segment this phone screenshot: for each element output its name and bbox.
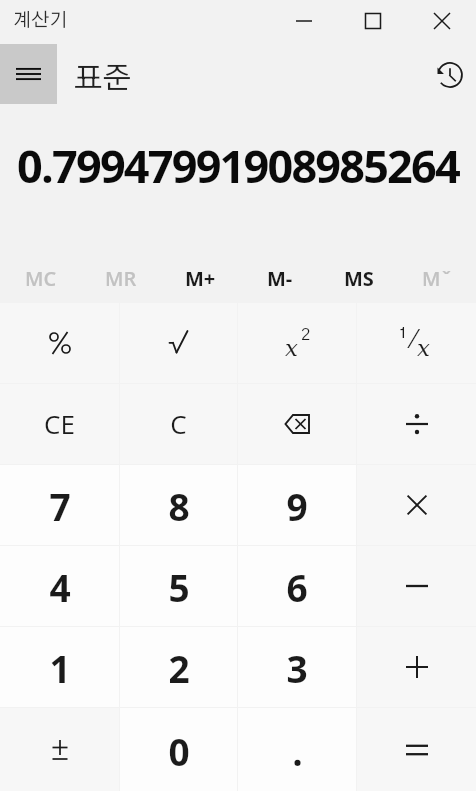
button[interactable]: 2 [120, 627, 237, 707]
button[interactable]: 3 [238, 627, 356, 707]
staticText: ¹⁄ [399, 328, 421, 353]
button[interactable]: Square root [120, 303, 237, 383]
button[interactable]: Open Navigation [0, 44, 57, 104]
button[interactable]: Multiply [357, 465, 476, 545]
button[interactable]: 6 [238, 546, 356, 626]
button[interactable]: Equals [357, 708, 476, 791]
button[interactable]: Divide [357, 384, 476, 464]
staticText: 표준 [74, 64, 132, 94]
staticText: 3 [286, 643, 308, 693]
button[interactable]: Close [419, 1, 465, 41]
staticText: x [417, 335, 430, 362]
staticText: CE [44, 406, 75, 441]
button[interactable]: Backspace [238, 384, 356, 464]
staticText: 0 [168, 726, 190, 776]
staticText: 7 [49, 481, 71, 531]
button[interactable]: 9 [238, 465, 356, 545]
staticText: C [170, 406, 187, 441]
button[interactable]: MC [0, 255, 80, 303]
button[interactable]: MR [80, 255, 160, 303]
staticText: 1 [49, 643, 71, 693]
button[interactable]: Minus [357, 546, 476, 626]
button[interactable]: Mˇ [397, 255, 476, 303]
staticText: 2 [168, 643, 190, 693]
button[interactable]: M- [239, 255, 318, 303]
button[interactable]: 4 [0, 546, 119, 626]
button[interactable]: C [120, 384, 237, 464]
button[interactable]: Plus [357, 627, 476, 707]
staticText: 9 [286, 481, 308, 531]
button[interactable]: 5 [120, 546, 237, 626]
staticText: 2 [301, 326, 311, 343]
staticText: 5 [168, 562, 190, 612]
staticText: x [285, 335, 298, 362]
button[interactable]: 8 [120, 465, 237, 545]
staticText: Mˇ [422, 265, 453, 292]
button[interactable]: 1 [0, 627, 119, 707]
staticText: 0.79947991908985264 [17, 135, 476, 196]
staticText: 8 [168, 481, 190, 531]
button[interactable]: Positive negative [0, 708, 119, 791]
button[interactable]: 7 [0, 465, 119, 545]
staticText: MR [105, 265, 137, 292]
button[interactable]: Minimize [281, 1, 327, 41]
button[interactable]: MS [318, 255, 397, 303]
staticText: 계산기 [13, 11, 68, 30]
staticText: 4 [49, 562, 71, 612]
button[interactable]: 0 [120, 708, 237, 791]
button[interactable]: Percent [0, 303, 119, 383]
button[interactable]: Maximize [350, 1, 396, 41]
button[interactable]: x [238, 303, 356, 383]
staticText: MC [25, 265, 57, 292]
staticText: M+ [185, 265, 216, 292]
button[interactable]: M+ [160, 255, 239, 303]
button[interactable]: History [426, 51, 474, 99]
staticText: . [292, 726, 303, 776]
staticText: M- [267, 265, 293, 292]
staticText: 6 [286, 562, 308, 612]
button[interactable]: . [238, 708, 356, 791]
button[interactable]: CE [0, 384, 119, 464]
staticText: MS [344, 265, 374, 292]
button[interactable]: ¹⁄ [357, 303, 476, 383]
